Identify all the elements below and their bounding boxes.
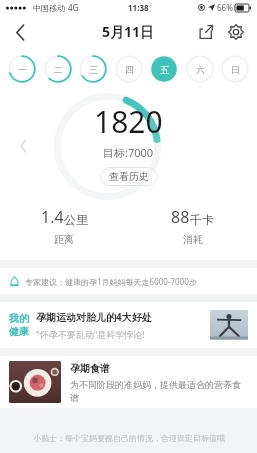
- button[interactable]: 三: [78, 54, 108, 84]
- staticText: 查看历史: [109, 170, 149, 183]
- button[interactable]: 1.4: [0, 206, 128, 246]
- staticText: 1.4: [41, 206, 64, 228]
- staticText: 健康: [9, 325, 29, 338]
- button[interactable]: 我的: [0, 302, 257, 348]
- staticText: 小贴士：每个宝妈要视自己的情况，合理设定目标值哦: [33, 433, 225, 443]
- button[interactable]: 一: [7, 54, 37, 84]
- button[interactable]: 六: [185, 54, 215, 84]
- staticText: 4G: [68, 2, 79, 13]
- button[interactable]: 88: [128, 206, 257, 246]
- staticText: 5月11日: [102, 22, 155, 41]
- staticText: 日: [231, 64, 240, 75]
- staticText: "怀孕不要乱动"是科学悖论!: [36, 328, 145, 340]
- button[interactable]: 查看历史: [100, 167, 158, 186]
- staticText: 孕期食谱: [70, 362, 110, 375]
- button[interactable]: 孕期食谱: [0, 356, 257, 408]
- button[interactable]: Previous day: [12, 135, 34, 157]
- button[interactable]: 日: [220, 54, 250, 84]
- staticText: 88: [171, 206, 190, 228]
- staticText: 四: [125, 64, 134, 75]
- button[interactable]: Back: [6, 18, 34, 46]
- staticText: 孕期运动对胎儿的4大好处: [36, 310, 152, 324]
- staticText: 专家建议：健康的孕1月妈妈每天走6000-7000步: [25, 276, 197, 287]
- button[interactable]: 专家建议：健康的孕1月妈妈每天走6000-7000步: [0, 268, 257, 294]
- button[interactable]: Settings: [223, 19, 249, 45]
- staticText: 三: [89, 64, 98, 75]
- staticText: 公里: [64, 212, 88, 227]
- staticText: 一: [18, 64, 27, 75]
- staticText: 消耗: [183, 233, 203, 246]
- staticText: 中国移动: [33, 3, 65, 13]
- button[interactable]: Share: [193, 19, 219, 45]
- button[interactable]: 二: [43, 54, 73, 84]
- staticText: 六: [196, 64, 205, 75]
- staticText: 66%: [217, 2, 233, 13]
- staticText: 11:38: [128, 2, 149, 13]
- staticText: 五: [160, 64, 169, 75]
- staticText: 目标:7000: [103, 145, 154, 160]
- staticText: 二: [54, 64, 63, 75]
- staticText: 为不同阶段的准妈妈，提供最适合的营养食谱: [70, 379, 248, 403]
- staticText: 我的: [9, 312, 29, 325]
- staticText: 距离: [54, 233, 74, 246]
- staticText: 千卡: [190, 212, 214, 227]
- button[interactable]: 五: [149, 54, 179, 84]
- button[interactable]: 四: [114, 54, 144, 84]
- staticText: 1820: [94, 101, 163, 142]
